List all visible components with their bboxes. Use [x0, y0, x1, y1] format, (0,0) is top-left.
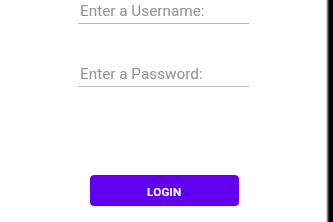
staticText: LOGIN — [147, 185, 182, 198]
staticText: Enter a Password: — [80, 65, 203, 83]
button[interactable]: LOGIN — [90, 175, 239, 206]
button[interactable] — [78, 0, 249, 24]
button[interactable] — [78, 63, 249, 87]
staticText: Enter a Username: — [80, 2, 205, 20]
